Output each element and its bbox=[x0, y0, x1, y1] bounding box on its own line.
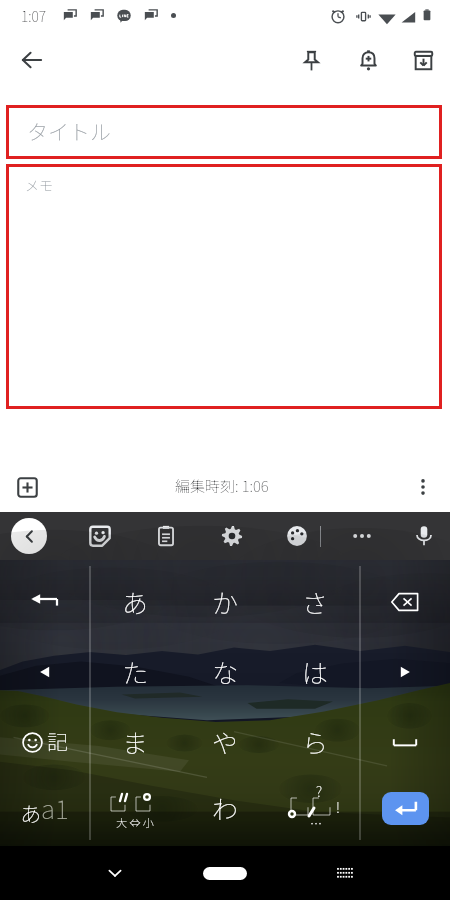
button[interactable]: Voice input bbox=[410, 522, 438, 550]
staticText: a1 bbox=[41, 789, 69, 827]
button[interactable]: Stickers bbox=[86, 522, 114, 550]
staticText: 大 ⇔ 小 bbox=[116, 814, 154, 830]
button[interactable]: Home bbox=[203, 867, 247, 880]
button[interactable]: Cursor right bbox=[360, 637, 450, 707]
button[interactable]: Themes bbox=[283, 522, 311, 550]
staticText: … bbox=[310, 815, 323, 832]
button[interactable]: た bbox=[90, 637, 180, 707]
button[interactable]: Add bbox=[7, 467, 47, 507]
button[interactable]: は bbox=[270, 637, 360, 707]
button[interactable]: Hide keyboard bbox=[95, 853, 135, 893]
staticText: 1:07 bbox=[21, 6, 47, 26]
button[interactable]: Pin bbox=[287, 36, 335, 84]
staticText: 編集時刻: 1:06 bbox=[175, 475, 269, 497]
button[interactable]: Remind me bbox=[344, 36, 392, 84]
button[interactable]: Archive bbox=[399, 36, 447, 84]
button[interactable]: Settings bbox=[218, 522, 246, 550]
button[interactable]: な bbox=[180, 637, 270, 707]
button[interactable]: ら bbox=[270, 707, 360, 777]
button[interactable]: さ bbox=[270, 567, 360, 637]
staticText: な bbox=[212, 653, 239, 691]
button[interactable]: か bbox=[180, 567, 270, 637]
button[interactable]: Back bbox=[8, 36, 56, 84]
staticText: あ bbox=[122, 583, 149, 621]
staticText: 記 bbox=[47, 726, 68, 756]
button[interactable]: Back bbox=[11, 518, 47, 554]
button[interactable]: Undo bbox=[0, 567, 90, 637]
staticText: た bbox=[122, 653, 149, 691]
staticText: さ bbox=[302, 583, 329, 621]
staticText: ま bbox=[122, 723, 149, 761]
button[interactable]: わ bbox=[180, 770, 270, 846]
button[interactable]: や bbox=[180, 707, 270, 777]
button[interactable]: Switch keyboard bbox=[325, 853, 365, 893]
staticText: ? bbox=[316, 781, 323, 801]
button[interactable]: Switch to alphabet bbox=[0, 770, 90, 846]
staticText: は bbox=[302, 653, 329, 691]
button[interactable]: Clipboard bbox=[152, 522, 180, 550]
button[interactable]: Dakuten and size bbox=[90, 770, 180, 846]
staticText: メモ bbox=[25, 175, 53, 195]
staticText: か bbox=[212, 583, 239, 621]
button[interactable]: あ bbox=[90, 567, 180, 637]
button[interactable]: Emoji and symbols bbox=[0, 707, 90, 777]
staticText: や bbox=[212, 723, 239, 761]
button[interactable]: Space bbox=[360, 707, 450, 777]
button[interactable]: Delete bbox=[360, 567, 450, 637]
staticText: あ bbox=[20, 798, 41, 828]
button[interactable]: More bbox=[347, 521, 377, 551]
button[interactable]: Enter bbox=[360, 770, 450, 846]
staticText: タイトル bbox=[27, 116, 111, 146]
button[interactable]: ま bbox=[90, 707, 180, 777]
staticText: わ bbox=[212, 789, 239, 827]
staticText: ら bbox=[302, 723, 329, 761]
button[interactable]: Cursor left bbox=[0, 637, 90, 707]
button[interactable]: More options bbox=[403, 467, 443, 507]
button[interactable]: Punctuation bbox=[270, 770, 360, 846]
staticText: ! bbox=[336, 797, 340, 817]
